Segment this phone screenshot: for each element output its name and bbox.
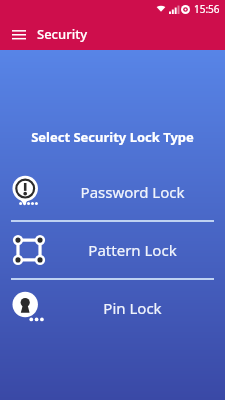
button[interactable]: Password Lock [0, 164, 225, 220]
staticText: 15:56 [194, 2, 220, 16]
staticText: Pattern Lock [48, 240, 217, 260]
staticText: Select Security Lock Type [0, 128, 225, 146]
button[interactable]: Pin Lock [0, 280, 225, 336]
button[interactable]: Open navigation menu [8, 23, 30, 45]
staticText: Password Lock [48, 182, 217, 202]
button[interactable]: Pattern Lock [0, 222, 225, 278]
staticText: Security [37, 25, 87, 43]
staticText: Pin Lock [48, 298, 217, 318]
